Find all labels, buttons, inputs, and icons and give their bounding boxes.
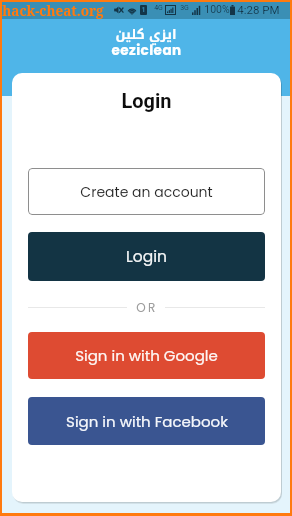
- staticText: 100%: [204, 3, 230, 15]
- staticText: 3G: [180, 4, 189, 12]
- button[interactable]: Create an account: [28, 168, 265, 215]
- staticText: 4:28 PM: [237, 3, 280, 16]
- button[interactable]: Sign in with Google: [28, 332, 265, 379]
- staticText: Login: [126, 246, 167, 268]
- staticText: eeziclean: [111, 41, 182, 60]
- staticText: hack-cheat.org: [2, 2, 104, 19]
- staticText: Sign in with Google: [75, 345, 218, 366]
- staticText: Sign in with Facebook: [66, 411, 228, 432]
- staticText: ايزي كلين: [115, 22, 177, 47]
- staticText: 1: [141, 6, 146, 14]
- staticText: 4G: [154, 4, 163, 12]
- staticText: Login: [121, 89, 172, 112]
- button[interactable]: Sign in with Facebook: [28, 397, 265, 445]
- staticText: OR: [136, 299, 158, 315]
- button[interactable]: Login: [28, 232, 265, 281]
- staticText: Create an account: [80, 182, 213, 202]
